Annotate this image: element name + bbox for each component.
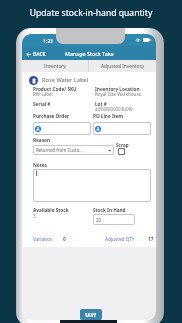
staticText: 1:21 — [43, 37, 54, 44]
button[interactable]: Returned from Custo... — [33, 145, 114, 155]
staticText: Adjusted QTY — [105, 236, 135, 242]
staticText: Update stock-in-hand quantity — [0, 7, 182, 19]
staticText: Available Stock — [33, 207, 69, 213]
button[interactable]: PO Line Item — [93, 122, 151, 135]
staticText: RW-Label — [33, 91, 53, 97]
staticText: a3908000003u09r — [95, 106, 134, 112]
button[interactable]: Adjusted Inventory — [89, 60, 156, 72]
button[interactable]: Purchase Order — [33, 122, 91, 135]
staticText: Product Code/ SKU — [33, 86, 77, 92]
staticText: 17 — [148, 236, 154, 242]
staticText: Adjusted Inventory — [101, 63, 144, 70]
staticText: BACK — [33, 51, 46, 57]
staticText: Stock In Hand — [93, 207, 126, 213]
button[interactable]: SAVE — [80, 309, 102, 320]
staticText: Manage Stock Take — [65, 50, 114, 57]
staticText: Notes — [33, 162, 47, 168]
staticText: Purchase Order — [33, 113, 70, 119]
button[interactable] — [33, 169, 151, 202]
staticText: Royal Oak Warehouse — [95, 91, 142, 97]
staticText: Serial # — [33, 101, 51, 107]
staticText: Variance — [33, 236, 52, 242]
button[interactable]: Inventory — [22, 60, 88, 72]
staticText: Reason — [33, 137, 51, 143]
button[interactable]: Rose Water Label — [29, 75, 89, 85]
staticText: Inventory Location — [95, 86, 140, 92]
staticText: 3 — [33, 213, 36, 219]
staticText: Rose Water Label — [42, 76, 89, 84]
staticText: PO Line Item — [93, 113, 124, 119]
button[interactable]: 20 — [93, 214, 135, 225]
staticText: Scrap — [116, 142, 129, 148]
staticText: 0 — [63, 236, 66, 242]
staticText: Inventory — [44, 63, 66, 70]
staticText: 20 — [96, 217, 102, 223]
staticText: Returned from Custo... — [36, 147, 83, 153]
button[interactable]: BACK — [22, 47, 50, 61]
staticText: Lot # — [95, 101, 107, 107]
staticText: SAVE — [85, 312, 97, 318]
button[interactable]: Scrap checkbox — [118, 148, 125, 155]
